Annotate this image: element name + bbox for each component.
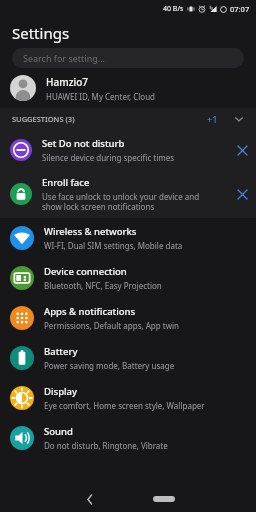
staticText: +1 — [207, 113, 218, 125]
staticText: Sound — [44, 425, 73, 438]
staticText: Hamzio7 — [46, 75, 88, 89]
staticText: Use face unlock to unlock your device an… — [42, 191, 200, 212]
button[interactable]: Apps & notifications — [0, 298, 256, 338]
staticText: Device connection — [44, 265, 127, 278]
button[interactable]: Dismiss Set Do not disturb — [230, 138, 254, 162]
staticText: Permissions, Default apps, App twin — [44, 320, 179, 331]
staticText: Eye comfort, Home screen style, Wallpape… — [44, 400, 205, 411]
staticText: Settings — [12, 23, 70, 43]
staticText: Display — [44, 385, 78, 398]
staticText: WI-FI, Dual SIM settings, Mobile data — [44, 240, 183, 251]
staticText: Enroll face — [42, 176, 90, 189]
staticText: 40 B/s — [163, 4, 184, 14]
other: Collapse suggestions — [232, 112, 246, 126]
button[interactable]: SUGGESTIONS (3) — [0, 108, 256, 130]
button[interactable]: Battery — [0, 338, 256, 378]
button[interactable]: Search for setting... — [12, 48, 244, 68]
button[interactable]: Display — [0, 378, 256, 418]
button[interactable]: Back — [77, 486, 103, 512]
staticText: 07:07 — [230, 4, 250, 14]
staticText: Apps & notifications — [44, 305, 136, 318]
button[interactable]: Device connection — [0, 258, 256, 298]
staticText: SUGGESTIONS (3) — [12, 114, 75, 124]
staticText: Set Do not disturb — [42, 137, 125, 150]
button[interactable]: Enroll face — [0, 170, 256, 218]
staticText: Silence device during specific times — [42, 152, 175, 163]
staticText: Wireless & networks — [44, 225, 137, 238]
staticText: Do not disturb, Ringtone, Vibrate — [44, 440, 168, 451]
staticText: Battery — [44, 345, 78, 358]
button[interactable]: Wireless & networks — [0, 218, 256, 258]
staticText: Power saving mode, Battery usage — [44, 360, 175, 371]
button[interactable]: Sound — [0, 418, 256, 458]
button[interactable]: Home — [149, 489, 179, 509]
staticText: Bluetooth, NFC, Easy Projection — [44, 280, 162, 291]
staticText: HUAWEI ID, My Center, Cloud — [46, 91, 156, 102]
staticText: Search for setting... — [23, 52, 105, 64]
button[interactable]: Set Do not disturb — [0, 130, 256, 170]
button[interactable]: Dismiss Enroll face — [230, 182, 254, 206]
button[interactable]: Hamzio7 — [0, 68, 256, 108]
